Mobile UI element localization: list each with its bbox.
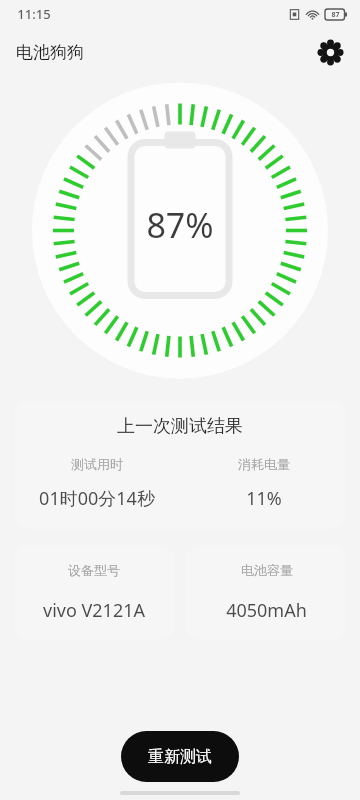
staticText: 电池容量 — [241, 562, 293, 578]
staticText: 重新测试 — [148, 747, 212, 767]
staticText: 上一次测试结果 — [117, 415, 243, 438]
staticText: 设备型号 — [68, 562, 120, 578]
button[interactable]: Settings — [312, 34, 348, 70]
staticText: 4050mAh — [226, 598, 307, 623]
staticText: 01时00分14秒 — [39, 486, 155, 511]
staticText: 测试用时 — [71, 456, 123, 472]
staticText: 电池狗狗 — [16, 42, 84, 63]
staticText: 87 — [331, 10, 340, 20]
staticText: 87% — [146, 202, 214, 248]
staticText: 11:15 — [17, 5, 51, 23]
staticText: vivo V2121A — [43, 598, 145, 623]
button[interactable]: 重新测试 — [121, 731, 239, 782]
staticText: 消耗电量 — [238, 456, 290, 472]
button[interactable]: 电池容量 — [186, 545, 347, 640]
staticText: 11% — [246, 486, 282, 511]
button[interactable]: 设备型号 — [13, 545, 174, 640]
button[interactable]: 上一次测试结果 — [13, 401, 347, 529]
